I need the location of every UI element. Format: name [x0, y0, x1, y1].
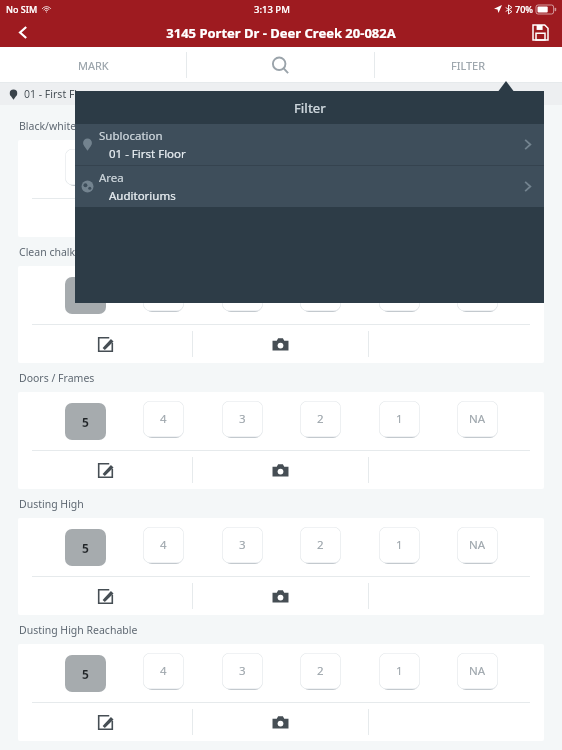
button[interactable]: Back: [0, 18, 46, 47]
button[interactable]: 2: [298, 653, 342, 693]
staticText: Auditoriums: [109, 188, 176, 204]
button[interactable]: 4: [141, 401, 185, 441]
button[interactable]: 1: [377, 401, 421, 441]
staticText: 3:13 PM: [254, 3, 290, 16]
staticText: Filter: [294, 99, 326, 117]
staticText: 4: [160, 411, 167, 427]
button[interactable]: Area: [75, 166, 544, 207]
staticText: 5: [82, 288, 89, 304]
staticText: 1: [396, 537, 403, 553]
staticText: Doors / Frames: [19, 371, 95, 385]
button[interactable]: NA: [455, 653, 499, 693]
staticText: Dusting High: [19, 497, 84, 511]
button[interactable]: 1: [377, 275, 421, 315]
button[interactable]: 5: [63, 527, 107, 567]
staticText: 3145 Porter Dr - Deer Creek 20-082A: [166, 24, 396, 42]
staticText: 5: [82, 666, 89, 682]
button[interactable]: Take photo: [193, 703, 368, 741]
staticText: 2: [317, 411, 324, 427]
staticText: 2: [317, 537, 324, 553]
staticText: 2: [317, 663, 324, 679]
staticText: FILTER: [451, 58, 486, 73]
staticText: No SIM: [6, 3, 38, 15]
button[interactable]: 1: [377, 653, 421, 693]
button[interactable]: Add note: [18, 577, 192, 615]
staticText: 1: [396, 663, 403, 679]
button[interactable]: [369, 199, 544, 237]
button[interactable]: 2: [298, 275, 342, 315]
button[interactable]: 2: [298, 401, 342, 441]
staticText: NA: [469, 537, 486, 553]
button[interactable]: 4: [141, 527, 185, 567]
button[interactable]: Take photo: [193, 325, 368, 363]
staticText: 5: [82, 414, 89, 430]
staticText: 5: [82, 540, 89, 556]
staticText: 01 - First Floor: [109, 146, 186, 162]
button[interactable]: NA: [455, 401, 499, 441]
button[interactable]: Take photo: [193, 199, 368, 237]
button[interactable]: 3: [220, 653, 264, 693]
staticText: 70%: [515, 3, 533, 15]
button[interactable]: 5: [63, 275, 107, 315]
staticText: 01 - First Floor: [24, 87, 95, 101]
button[interactable]: 5: [63, 653, 107, 693]
staticText: Black/white boards: [19, 119, 114, 133]
button[interactable]: 3: [220, 275, 264, 315]
button[interactable]: 3: [220, 527, 264, 567]
staticText: Clean chalk/marker trays: [19, 245, 142, 259]
button[interactable]: 2: [298, 527, 342, 567]
button[interactable]: Add note: [18, 325, 192, 363]
button[interactable]: 4: [141, 653, 185, 693]
staticText: 1: [396, 411, 403, 427]
staticText: 4: [160, 537, 167, 553]
button[interactable]: NA: [455, 527, 499, 567]
button[interactable]: Add note: [18, 451, 192, 489]
button[interactable]: MARK: [0, 47, 186, 83]
button[interactable]: 1: [377, 527, 421, 567]
button[interactable]: NA: [455, 275, 499, 315]
staticText: Area: [99, 170, 124, 186]
button[interactable]: Add note: [18, 703, 192, 741]
button[interactable]: 3: [220, 401, 264, 441]
button[interactable]: FILTER: [375, 47, 562, 83]
button[interactable]: Save: [518, 18, 562, 47]
staticText: Dusting High Reachable: [19, 623, 138, 637]
staticText: Sublocation: [99, 128, 163, 144]
button[interactable]: 4: [141, 275, 185, 315]
staticText: 3: [239, 411, 246, 427]
staticText: 3: [239, 663, 246, 679]
staticText: 3: [239, 537, 246, 553]
staticText: MARK: [78, 58, 109, 73]
staticText: 4: [160, 663, 167, 679]
staticText: NA: [469, 411, 486, 427]
button[interactable]: Sublocation: [75, 124, 544, 165]
button[interactable]: Search: [187, 47, 374, 83]
button[interactable]: Add note: [18, 199, 192, 237]
button[interactable]: Take photo: [193, 451, 368, 489]
button[interactable]: 4: [141, 149, 185, 189]
staticText: NA: [469, 663, 486, 679]
button[interactable]: 5: [63, 149, 107, 189]
button[interactable]: Take photo: [193, 577, 368, 615]
button[interactable]: 5: [63, 401, 107, 441]
